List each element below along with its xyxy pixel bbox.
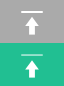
button[interactable]: Scroll to top: [0, 43, 64, 86]
button[interactable]: Scroll to top: [0, 0, 64, 43]
